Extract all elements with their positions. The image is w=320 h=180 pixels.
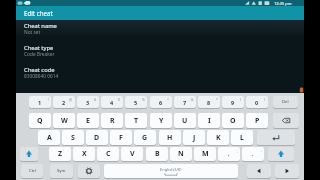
staticText: * xyxy=(216,97,218,102)
button[interactable]: Cheat name xyxy=(24,22,296,42)
staticText: 0 xyxy=(255,99,259,106)
staticText: ! xyxy=(48,97,49,102)
button[interactable]: K xyxy=(207,130,229,145)
button[interactable]: P xyxy=(246,113,268,128)
button[interactable]: Ctrl xyxy=(21,164,43,178)
button[interactable] xyxy=(78,164,100,178)
staticText: K xyxy=(216,133,221,143)
staticText: B xyxy=(155,149,160,159)
staticText: 8 xyxy=(207,99,211,106)
button[interactable]: C xyxy=(97,147,119,161)
button[interactable]: U xyxy=(174,113,196,128)
button[interactable]: D xyxy=(86,130,108,145)
button[interactable] xyxy=(20,147,38,161)
button[interactable]: Z xyxy=(49,147,71,161)
staticText: L xyxy=(240,133,244,143)
staticText: % xyxy=(142,97,145,102)
button[interactable]: H xyxy=(159,130,181,145)
staticText: : xyxy=(261,148,262,153)
button[interactable]: 2 xyxy=(53,96,75,108)
button[interactable]: 5 xyxy=(125,96,147,108)
button[interactable]: Del xyxy=(273,96,298,108)
staticText: Not set xyxy=(24,29,41,36)
staticText: ; xyxy=(237,148,238,153)
button[interactable]: 0 xyxy=(246,96,268,108)
button[interactable]: V xyxy=(121,147,143,161)
staticText: , xyxy=(228,151,230,158)
button[interactable] xyxy=(275,164,299,178)
staticText: Sym xyxy=(57,168,66,174)
button[interactable]: J xyxy=(183,130,205,145)
staticText: 4 xyxy=(110,99,114,106)
staticText: U xyxy=(182,116,188,126)
button[interactable]: F xyxy=(110,130,132,145)
staticText: 6 xyxy=(159,99,163,106)
button[interactable]: L xyxy=(231,130,253,145)
button[interactable]: W xyxy=(53,113,75,128)
staticText: ( xyxy=(240,97,242,102)
staticText: 2 xyxy=(62,99,66,106)
button[interactable]: Sym xyxy=(50,164,73,178)
staticText: S xyxy=(71,133,75,143)
staticText: Code Breaker xyxy=(24,51,55,58)
staticText: E xyxy=(86,116,90,126)
button[interactable]: S xyxy=(62,130,84,145)
button[interactable]: 8 xyxy=(198,96,220,108)
button[interactable]: Cheat type xyxy=(24,44,296,64)
button[interactable]: 9 xyxy=(222,96,244,108)
button[interactable]: 6 xyxy=(150,96,172,108)
staticText: D xyxy=(94,133,100,143)
button[interactable]: I xyxy=(198,113,220,128)
staticText: P xyxy=(255,116,260,126)
staticText: Cheat code xyxy=(24,66,55,74)
button[interactable]: 4 xyxy=(101,96,123,108)
staticText: N xyxy=(178,149,184,159)
button[interactable]: , xyxy=(218,147,240,161)
staticText: 9 xyxy=(231,99,235,106)
staticText: T xyxy=(134,116,139,126)
button[interactable]: G xyxy=(134,130,156,145)
staticText: Edit cheat xyxy=(24,9,53,17)
button[interactable]: R xyxy=(101,113,123,128)
staticText: 7 xyxy=(183,99,187,106)
button[interactable] xyxy=(273,113,299,128)
button[interactable]: English(UK) xyxy=(104,164,238,178)
staticText: G xyxy=(142,133,148,143)
button[interactable]: Q xyxy=(29,113,51,128)
button[interactable]: Edit cheat xyxy=(16,6,304,20)
staticText: X xyxy=(82,149,87,159)
button[interactable]: B xyxy=(146,147,168,161)
staticText: Q xyxy=(37,116,43,126)
button[interactable] xyxy=(257,130,295,145)
button[interactable]: T xyxy=(125,113,147,128)
button[interactable]: 3 xyxy=(77,96,99,108)
staticText: V xyxy=(130,149,135,159)
staticText: 1 xyxy=(38,99,42,106)
staticText: & xyxy=(191,97,194,102)
button[interactable] xyxy=(247,164,271,178)
button[interactable]: 7 xyxy=(174,96,196,108)
staticText: H xyxy=(167,133,173,143)
button[interactable]: O xyxy=(222,113,244,128)
button[interactable]: 1 xyxy=(29,96,51,108)
staticText: F xyxy=(119,133,123,143)
button[interactable]: Y xyxy=(150,113,172,128)
staticText: J xyxy=(193,133,196,143)
button[interactable]: A xyxy=(38,130,60,145)
staticText: Cheat type xyxy=(24,44,54,52)
staticText: 3 xyxy=(86,99,90,106)
staticText: Y xyxy=(159,116,164,126)
staticText: W xyxy=(61,116,68,126)
button[interactable]: E xyxy=(77,113,99,128)
button[interactable]: N xyxy=(170,147,192,161)
staticText: ) xyxy=(264,97,266,102)
staticText: O xyxy=(230,116,236,126)
staticText: 5 xyxy=(134,99,138,106)
button[interactable] xyxy=(268,147,294,161)
button[interactable]: M xyxy=(194,147,216,161)
button[interactable]: X xyxy=(73,147,95,161)
staticText: Ctrl xyxy=(29,168,36,174)
button[interactable]: Cheat code xyxy=(24,66,296,86)
staticText: 83008640 0614 xyxy=(24,73,59,80)
button[interactable]: . xyxy=(242,147,264,161)
